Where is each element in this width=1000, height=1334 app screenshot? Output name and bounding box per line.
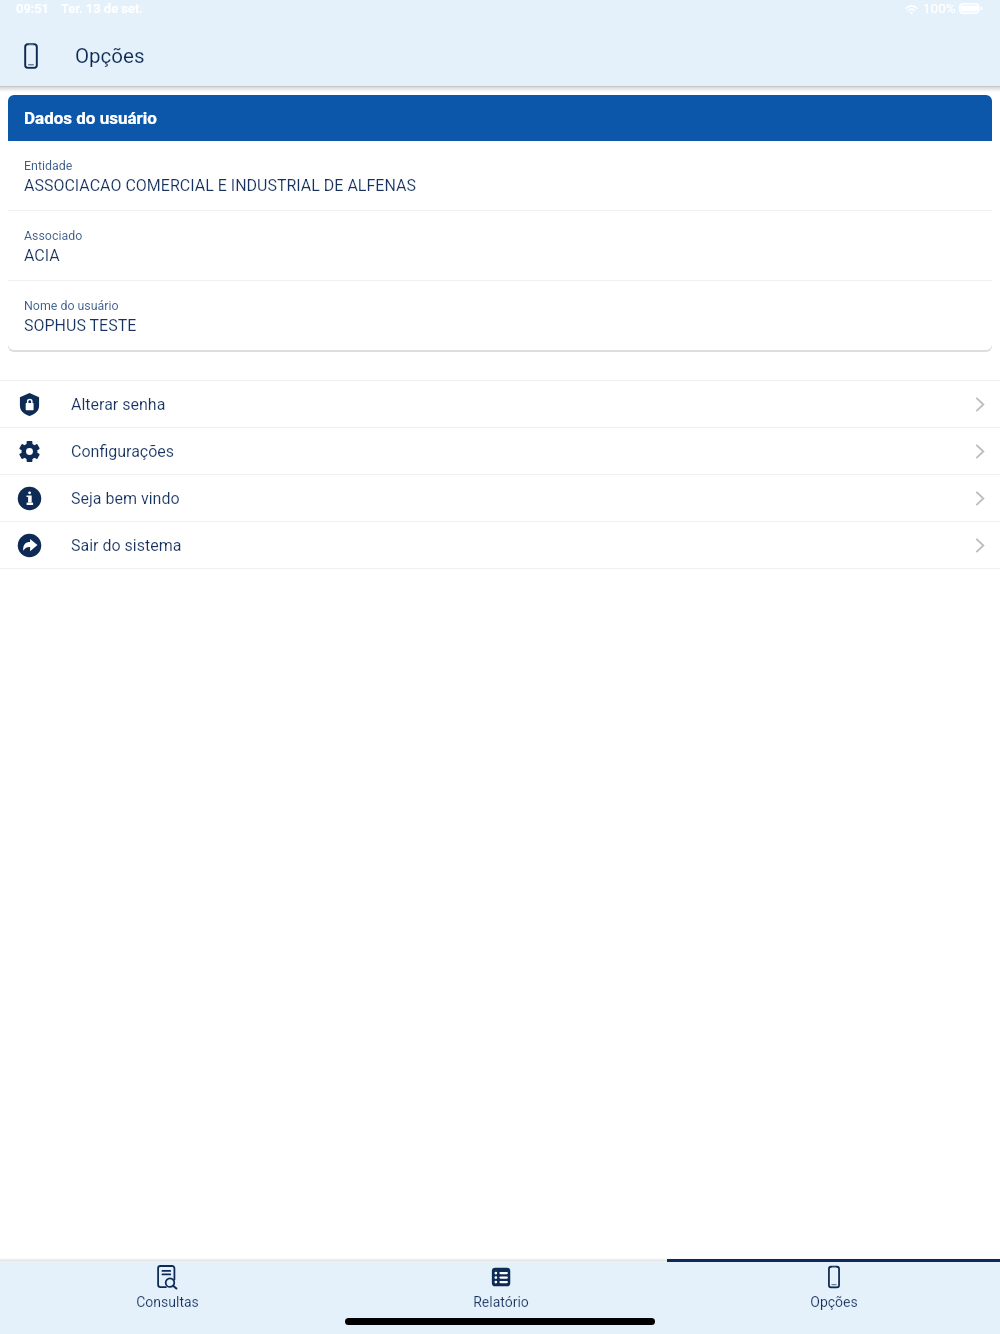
staticText: 09:51: [16, 1, 49, 16]
staticText: Consultas: [136, 1294, 199, 1310]
staticText: Dados do usuário: [24, 108, 157, 128]
staticText: Alterar senha: [71, 395, 166, 414]
staticText: Entidade: [24, 158, 73, 173]
staticText: 100%: [923, 0, 956, 16]
button[interactable]: Alterar senha: [0, 381, 1000, 427]
button[interactable]: Opções: [667, 1263, 1000, 1332]
staticText: Ter. 13 de set.: [61, 1, 143, 16]
staticText: Sair do sistema: [71, 536, 182, 555]
button[interactable]: Configurações: [0, 428, 1000, 474]
other: Configurações: [16, 438, 43, 465]
other: Seja bem vindo: [16, 485, 43, 512]
button[interactable]: Sair do sistema: [0, 522, 1000, 568]
button[interactable]: Relatório: [334, 1263, 667, 1332]
staticText: Opções: [810, 1294, 858, 1310]
staticText: ACIA: [24, 246, 60, 265]
staticText: Nome do usuário: [24, 298, 119, 313]
other: Alterar senha: [16, 391, 43, 418]
staticText: ASSOCIACAO COMERCIAL E INDUSTRIAL DE ALF…: [24, 176, 416, 195]
staticText: Associado: [24, 228, 83, 243]
staticText: Relatório: [473, 1294, 529, 1310]
button[interactable]: Seja bem vindo: [0, 475, 1000, 521]
staticText: Configurações: [71, 442, 175, 461]
other: Sair do sistema: [16, 532, 43, 559]
staticText: Seja bem vindo: [71, 489, 180, 508]
staticText: SOPHUS TESTE: [24, 316, 137, 335]
button[interactable]: Consultas: [0, 1263, 334, 1332]
staticText: Opções: [75, 44, 145, 68]
